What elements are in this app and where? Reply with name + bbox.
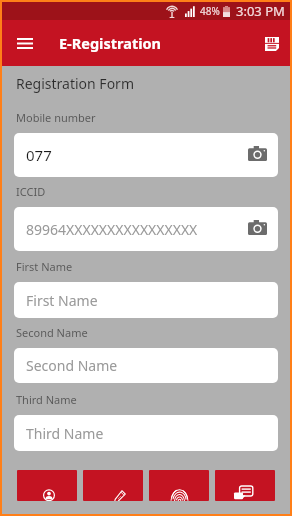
staticText: Second Name bbox=[26, 356, 118, 375]
button[interactable]: First Name bbox=[14, 282, 278, 318]
staticText: Third Name bbox=[26, 424, 104, 443]
staticText: E-Registration bbox=[59, 33, 161, 53]
button[interactable]: Take photo bbox=[17, 470, 77, 501]
button[interactable]: 077 bbox=[14, 133, 278, 177]
staticText: Second Name bbox=[16, 325, 88, 340]
staticText: ICCID bbox=[16, 184, 46, 199]
staticText: 89964XXXXXXXXXXXXXXXX bbox=[26, 220, 198, 239]
staticText: Registration Form bbox=[16, 74, 134, 93]
staticText: 3:03 PM bbox=[236, 2, 285, 20]
staticText: Third Name bbox=[16, 392, 77, 407]
staticText: First Name bbox=[16, 259, 73, 274]
button[interactable]: 89964XXXXXXXXXXXXXXXX bbox=[14, 207, 278, 251]
button[interactable]: Second Name bbox=[14, 348, 278, 383]
button[interactable]: Open navigation menu bbox=[11, 29, 39, 57]
button[interactable]: Save bbox=[259, 31, 285, 57]
staticText: 48% bbox=[200, 4, 220, 18]
button[interactable]: Third Name bbox=[14, 415, 278, 451]
staticText: First Name bbox=[26, 291, 98, 310]
staticText: 077 bbox=[26, 145, 52, 165]
button[interactable]: Fingerprint bbox=[149, 470, 209, 501]
staticText: Mobile number bbox=[16, 110, 96, 125]
button[interactable]: Signature bbox=[83, 470, 143, 501]
button[interactable]: Messages bbox=[215, 470, 275, 501]
